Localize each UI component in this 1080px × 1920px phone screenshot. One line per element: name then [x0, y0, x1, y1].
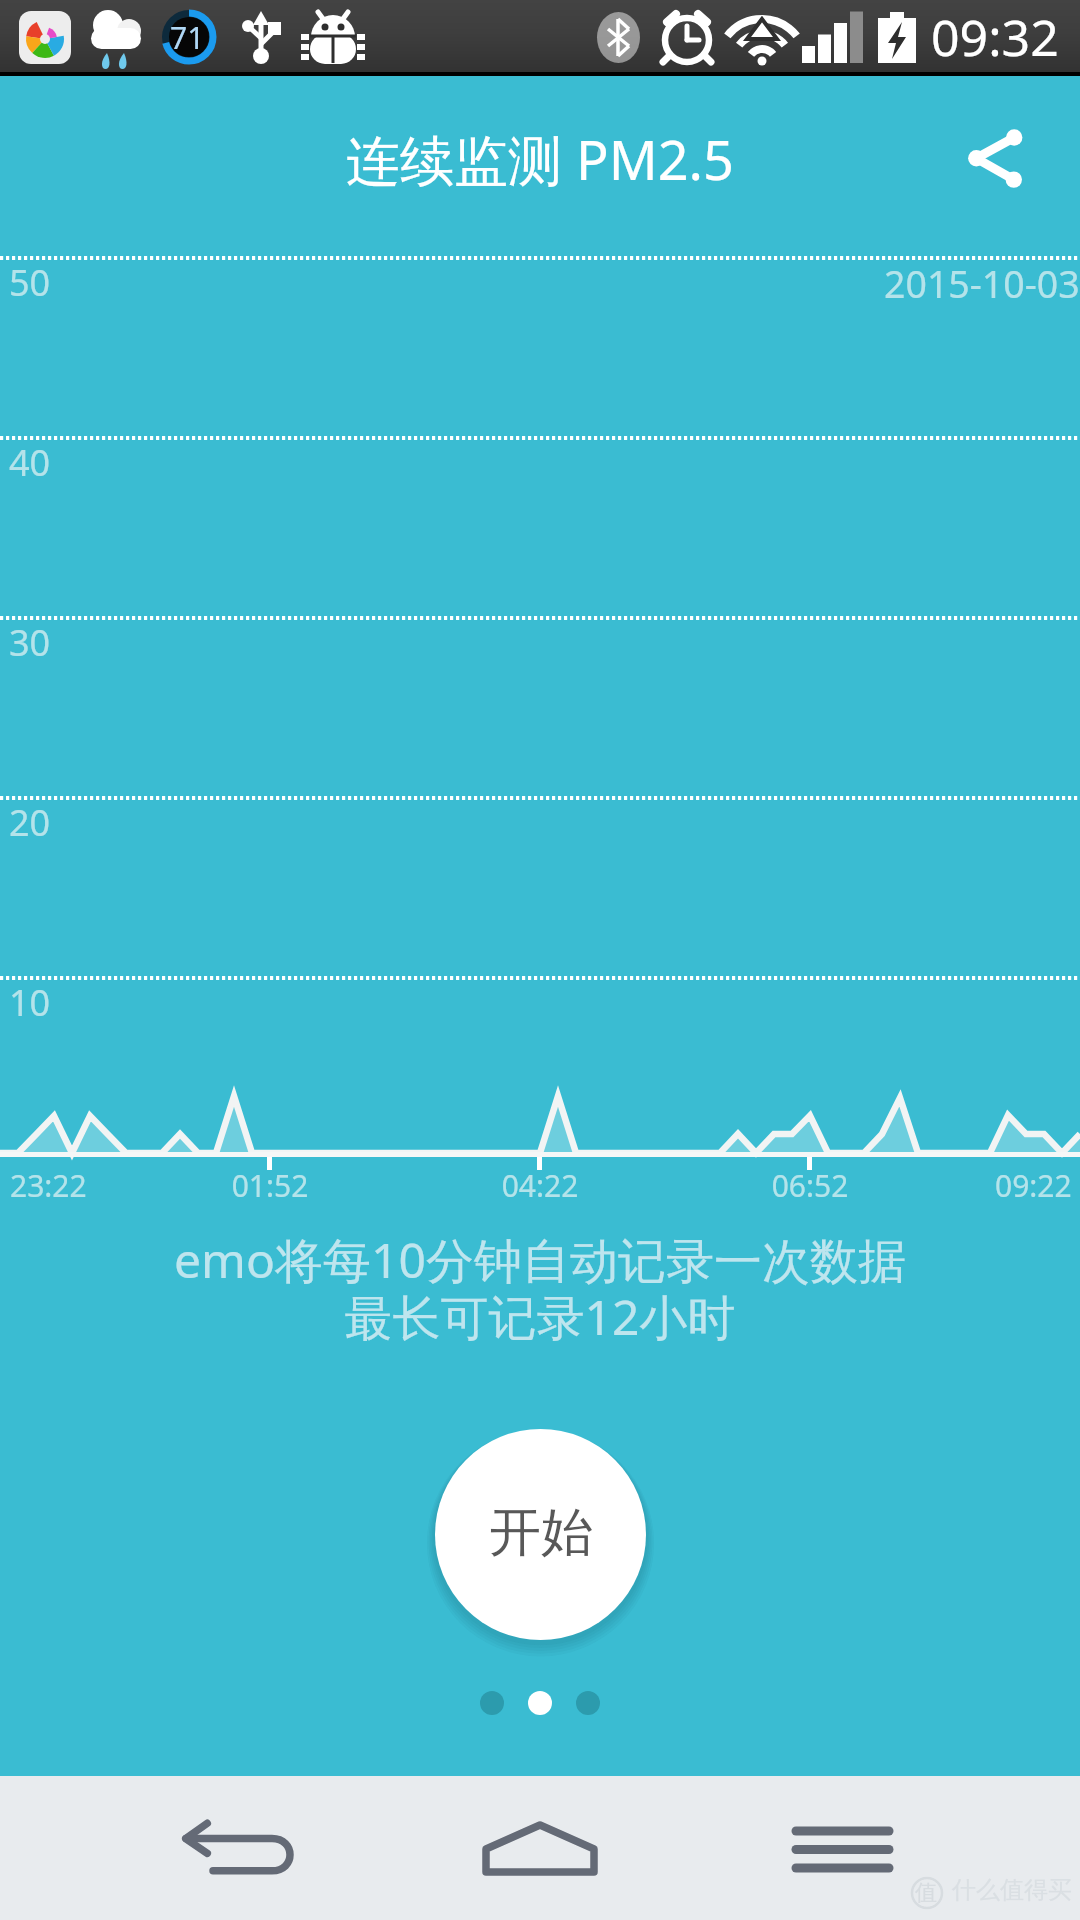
staticText: 09:22 [995, 1165, 1072, 1206]
button[interactable]: Page 2, current page [528, 1691, 552, 1715]
staticText: 开始 [489, 1500, 593, 1566]
staticText: 06:52 [710, 1165, 910, 1206]
staticText: 2015-10-03 [884, 258, 1080, 309]
staticText: 09:32 [931, 3, 1059, 71]
staticText: 71 [170, 17, 205, 58]
button[interactable]: Home [460, 1796, 620, 1900]
staticText: emo将每10分钟自动记录一次数据 [0, 1227, 1080, 1293]
staticText: 10 [9, 978, 51, 1027]
button[interactable]: 开始 [435, 1429, 646, 1640]
button[interactable]: Back [140, 1796, 340, 1900]
button[interactable]: Recent apps [770, 1796, 920, 1900]
staticText: 50 [9, 258, 51, 307]
staticText: 什么值得买 [952, 1875, 1072, 1905]
button[interactable]: Share [930, 100, 1050, 218]
staticText: 20 [9, 798, 51, 847]
staticText: 04:22 [440, 1165, 640, 1206]
staticText: 30 [9, 618, 51, 667]
staticText: 40 [9, 438, 51, 487]
staticText: 值 [915, 1879, 937, 1907]
button[interactable]: Page 3 [576, 1691, 600, 1715]
button[interactable]: Page 1 [480, 1691, 504, 1715]
staticText: 最长可记录12小时 [0, 1284, 1080, 1350]
staticText: 连续监测 PM2.5 [346, 122, 734, 196]
staticText: 23:22 [10, 1165, 87, 1206]
staticText: 01:52 [170, 1165, 370, 1206]
